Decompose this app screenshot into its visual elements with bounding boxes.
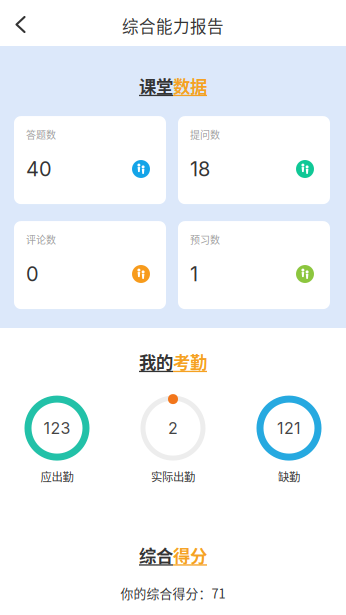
staticText: 实际出勤 xyxy=(151,468,195,484)
staticText: 预习数 xyxy=(190,232,220,247)
staticText: 121 xyxy=(277,418,301,438)
staticText: 40 xyxy=(26,157,52,181)
staticText: 1 xyxy=(190,262,198,286)
staticText: 综合 xyxy=(139,542,173,568)
staticText: 应出勤 xyxy=(40,468,73,484)
staticText: 18 xyxy=(190,157,210,181)
staticText: 2 xyxy=(168,418,178,438)
staticText: 答题数 xyxy=(26,127,56,142)
button[interactable]: Back xyxy=(0,0,41,46)
staticText: 综合能力报告 xyxy=(122,13,224,37)
staticText: 评论数 xyxy=(26,232,56,247)
staticText: 缺勤 xyxy=(278,468,300,484)
staticText: 得分 xyxy=(173,542,207,568)
staticText: 数据 xyxy=(173,73,207,98)
staticText: 123 xyxy=(43,418,70,438)
staticText: 你的综合得分：71 xyxy=(120,584,225,602)
staticText: 考勤 xyxy=(173,349,207,374)
staticText: 课堂 xyxy=(139,73,173,98)
staticText: 我的 xyxy=(139,349,173,374)
staticText: 0 xyxy=(26,262,39,286)
staticText: 提问数 xyxy=(190,127,220,142)
